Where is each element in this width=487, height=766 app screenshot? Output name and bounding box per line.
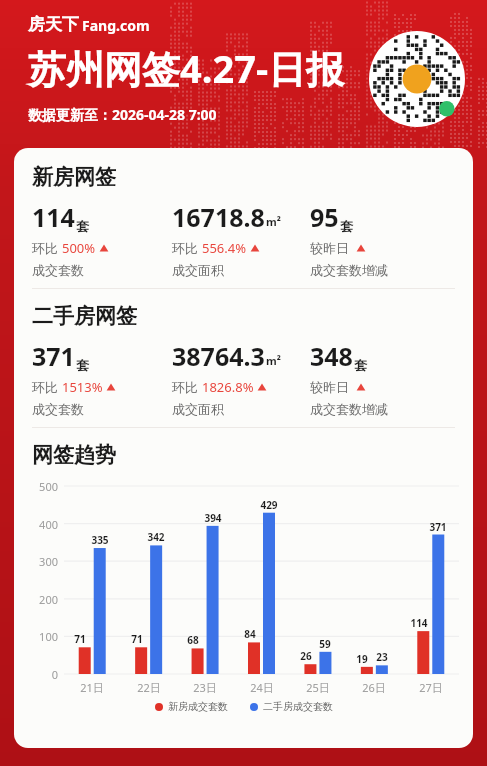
staticText: 数据更新至：2026-04-28 7:00 bbox=[28, 105, 217, 124]
staticText: 成交套数增减 bbox=[310, 262, 388, 278]
staticText: 套 bbox=[76, 218, 89, 234]
staticText: 23日 bbox=[185, 680, 225, 695]
staticText: 0 bbox=[22, 667, 58, 682]
staticText: 429 bbox=[257, 498, 281, 512]
staticText: 95 bbox=[310, 200, 339, 234]
staticText: 24日 bbox=[242, 680, 282, 695]
staticText: 59 bbox=[313, 637, 337, 651]
staticText: 200 bbox=[22, 592, 58, 607]
staticText: 371 bbox=[32, 339, 75, 373]
staticText: 500% bbox=[62, 239, 96, 257]
staticText: 1826.8% bbox=[202, 378, 254, 396]
staticText: 38764.3 bbox=[172, 339, 265, 373]
staticText: 371 bbox=[426, 520, 450, 534]
staticText: 84 bbox=[238, 627, 262, 641]
staticText: m² bbox=[266, 214, 281, 229]
staticText: 68 bbox=[181, 633, 205, 647]
staticText: 二手房成交套数 bbox=[263, 700, 333, 713]
staticText: 网签趋势 bbox=[32, 442, 116, 468]
staticText: 成交套数 bbox=[32, 401, 84, 417]
staticText: 环比 bbox=[32, 239, 62, 257]
staticText: 71 bbox=[125, 632, 149, 646]
staticText: 成交面积 bbox=[172, 262, 224, 278]
staticText: 300 bbox=[22, 554, 58, 569]
staticText: 环比 bbox=[172, 378, 202, 396]
staticText: 新房网签 bbox=[32, 164, 116, 190]
staticText: 71 bbox=[68, 632, 92, 646]
staticText: 套 bbox=[354, 357, 367, 373]
staticText: 19 bbox=[350, 652, 374, 666]
staticText: 套 bbox=[340, 218, 353, 234]
staticText: 成交面积 bbox=[172, 401, 224, 417]
staticText: 500 bbox=[22, 479, 58, 494]
staticText: 21日 bbox=[72, 680, 112, 695]
staticText: 环比 bbox=[172, 239, 202, 257]
staticText: 1513% bbox=[62, 378, 103, 396]
staticText: 23 bbox=[370, 650, 394, 664]
staticText: 114 bbox=[407, 616, 431, 630]
staticText: 342 bbox=[144, 530, 168, 544]
staticText: 新房成交套数 bbox=[168, 700, 228, 713]
staticText: 25日 bbox=[298, 680, 338, 695]
staticText: 成交套数 bbox=[32, 262, 84, 278]
staticText: 22日 bbox=[129, 680, 169, 695]
staticText: 26 bbox=[294, 649, 318, 663]
staticText: 成交套数增减 bbox=[310, 401, 388, 417]
staticText: 556.4% bbox=[202, 239, 247, 257]
staticText: 较昨日 bbox=[310, 378, 353, 396]
staticText: 400 bbox=[22, 517, 58, 532]
staticText: 环比 bbox=[32, 378, 62, 396]
staticText: 335 bbox=[88, 533, 112, 547]
staticText: 较昨日 bbox=[310, 239, 353, 257]
staticText: 394 bbox=[201, 511, 225, 525]
button[interactable]: 微信扫码二维码 bbox=[369, 31, 465, 127]
staticText: 二手房网签 bbox=[32, 303, 137, 329]
staticText: 苏州网签4.27-日报 bbox=[28, 42, 345, 94]
staticText: 114 bbox=[32, 200, 75, 234]
staticText: 100 bbox=[22, 629, 58, 644]
staticText: 16718.8 bbox=[172, 200, 265, 234]
staticText: 348 bbox=[310, 339, 353, 373]
staticText: m² bbox=[266, 353, 281, 368]
staticText: Fang.com bbox=[82, 16, 150, 35]
staticText: 27日 bbox=[411, 680, 451, 695]
staticText: 26日 bbox=[354, 680, 394, 695]
staticText: 套 bbox=[76, 357, 89, 373]
staticText: 房天下 bbox=[28, 14, 79, 35]
